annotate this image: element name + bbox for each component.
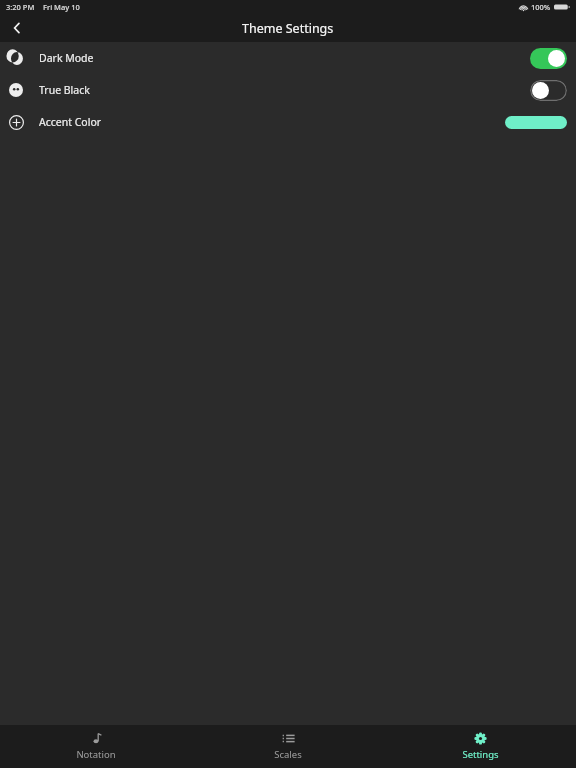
staticText: Scales [274, 748, 302, 761]
staticText: Fri May 10 [43, 2, 80, 12]
staticText: Dark Mode [39, 51, 94, 65]
staticText: Theme Settings [242, 20, 334, 37]
button[interactable]: Settings [384, 725, 576, 768]
staticText: Settings [462, 748, 499, 761]
staticText: Accent Color [39, 115, 102, 129]
button[interactable]: True Black [0, 74, 576, 106]
button[interactable]: Accent Color [0, 106, 576, 138]
button[interactable]: Dark Mode [0, 42, 576, 74]
staticText: 100% [531, 2, 551, 12]
button[interactable]: Switch on [530, 48, 567, 69]
button[interactable]: Notation [0, 725, 192, 768]
staticText: 3:20 PM [6, 2, 35, 12]
button[interactable]: Accent Color [505, 116, 567, 129]
button[interactable]: Scales [192, 725, 384, 768]
staticText: True Black [39, 83, 90, 97]
button[interactable]: Switch off [530, 80, 567, 101]
button[interactable]: Back [0, 14, 34, 42]
staticText: Notation [76, 748, 116, 761]
